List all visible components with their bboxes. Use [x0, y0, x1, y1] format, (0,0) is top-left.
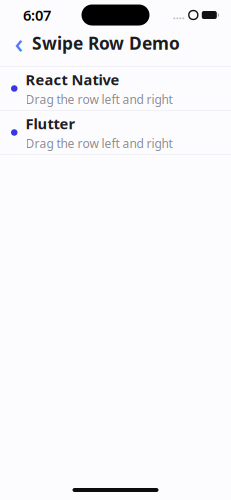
staticText: ‹ [14, 25, 23, 61]
staticText: Swipe Row Demo [32, 31, 180, 54]
staticText: .... [173, 8, 185, 22]
button[interactable]: Flutter [0, 111, 231, 154]
staticText: Flutter [25, 114, 75, 133]
staticText: 6:07 [23, 5, 51, 25]
staticText: React Native [25, 70, 119, 89]
staticText: Drag the row left and right [25, 91, 172, 107]
button[interactable]: Back [6, 31, 32, 55]
staticText: Drag the row left and right [25, 135, 172, 151]
button[interactable]: React Native [0, 67, 231, 110]
